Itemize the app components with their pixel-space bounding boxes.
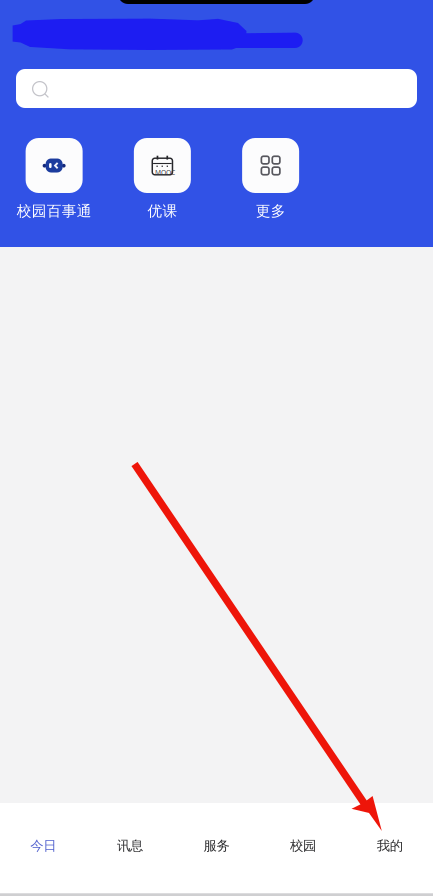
button[interactable]: 今日 — [0, 803, 87, 893]
staticText: 优课 — [147, 202, 177, 220]
staticText: 更多 — [256, 202, 286, 220]
staticText: 校园百事通 — [17, 202, 92, 220]
button[interactable]: MOOC — [108, 138, 216, 220]
button[interactable]: 校园百事通 — [0, 138, 108, 220]
staticText: 今日 — [30, 838, 56, 854]
button[interactable]: 校园 — [260, 803, 346, 893]
button[interactable] — [16, 69, 417, 108]
staticText: 我的 — [377, 838, 403, 854]
staticText: MOOC — [155, 168, 175, 177]
button[interactable]: 讯息 — [87, 803, 173, 893]
button[interactable]: 服务 — [173, 803, 260, 893]
button[interactable]: 更多 — [216, 138, 325, 220]
staticText: 讯息 — [117, 838, 143, 854]
staticText: 服务 — [203, 838, 229, 854]
staticText: 校园 — [290, 838, 316, 854]
button[interactable]: 我的 — [346, 803, 433, 893]
